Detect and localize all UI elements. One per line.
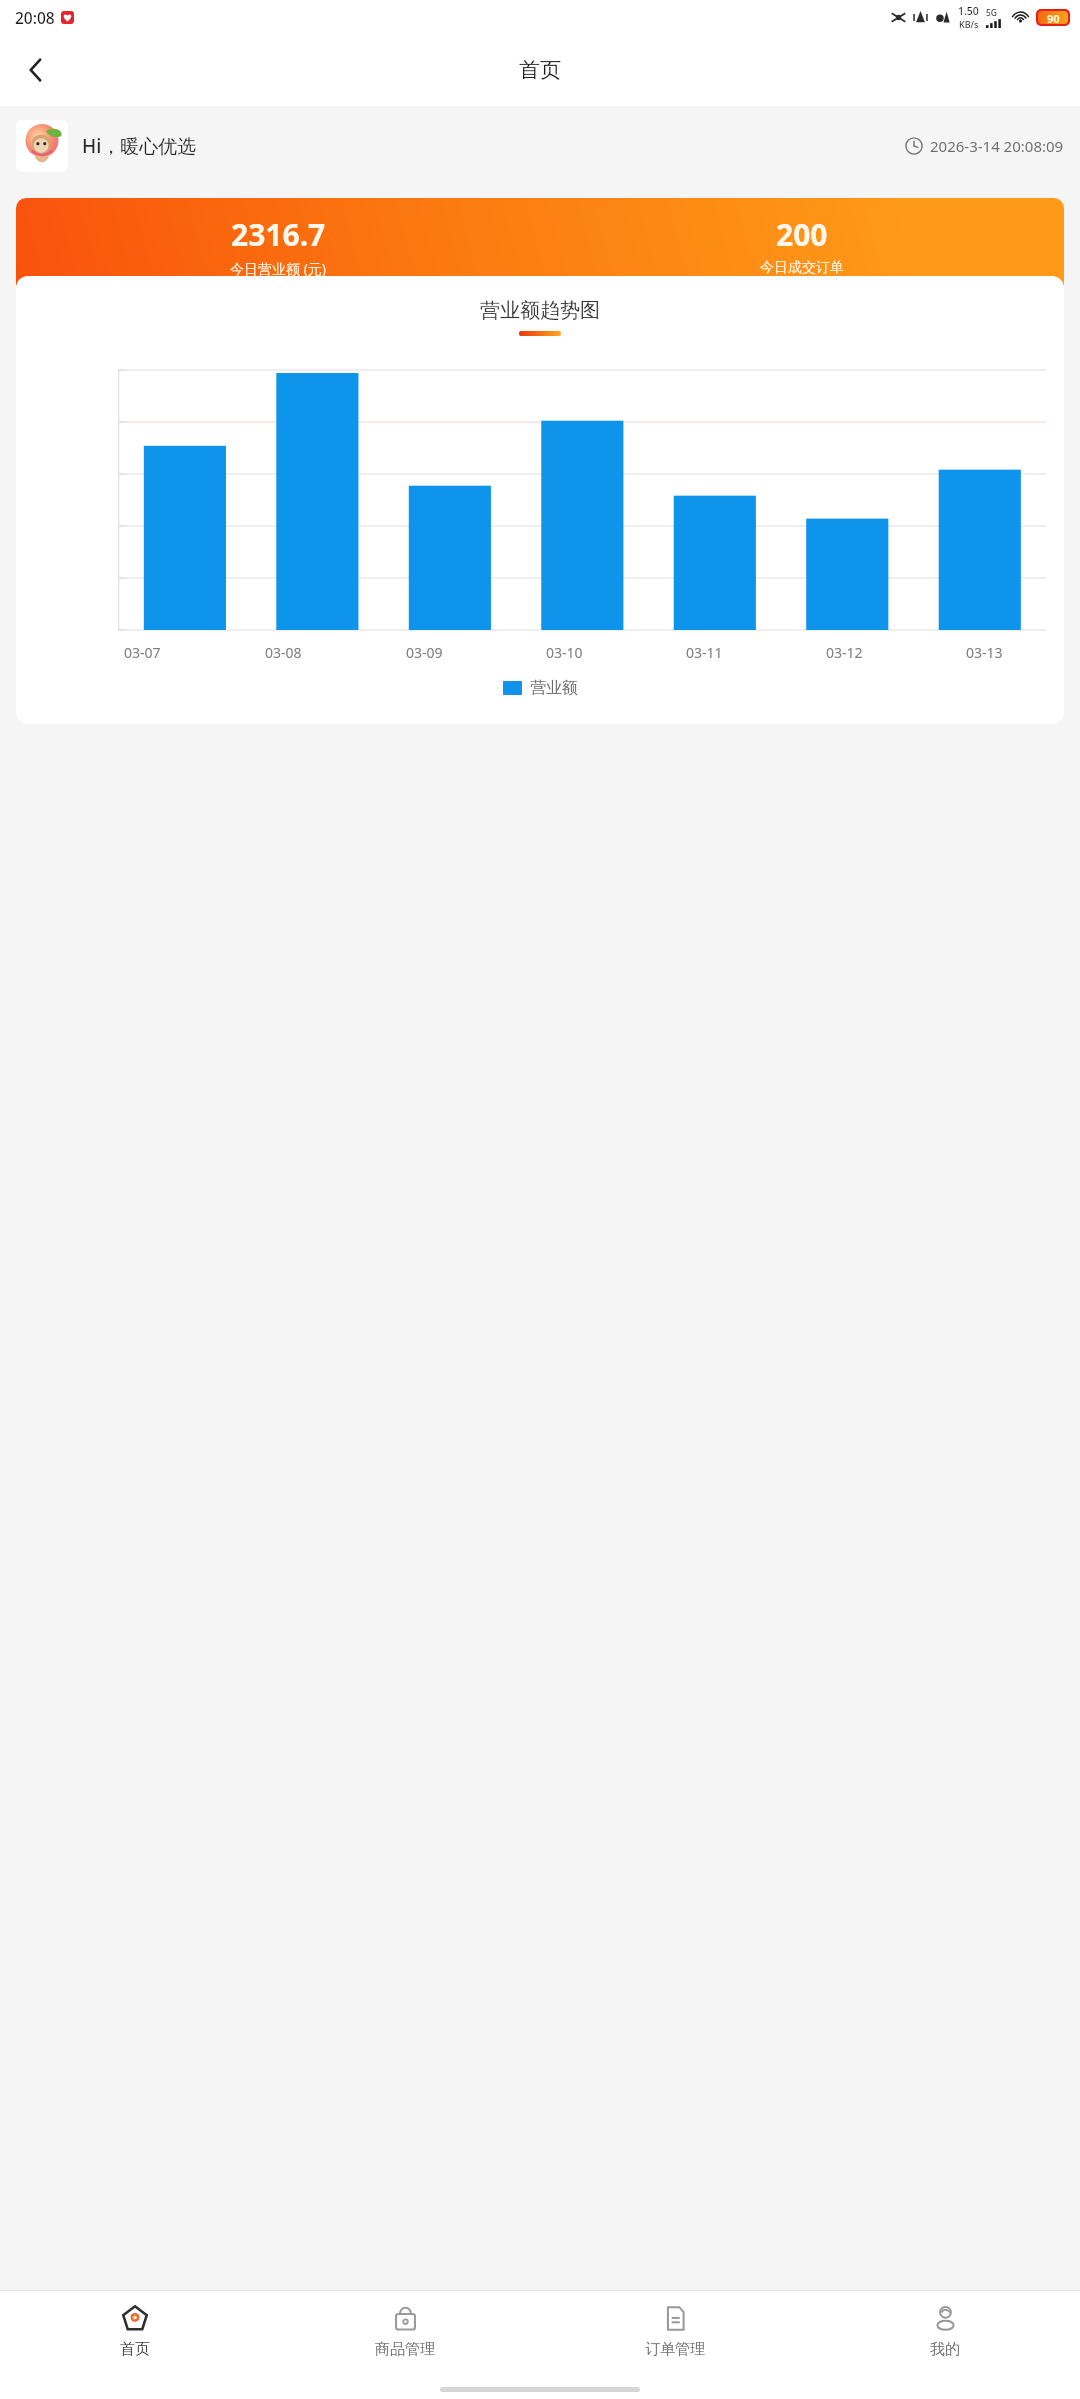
staticText: 今日成交订单 xyxy=(760,259,844,277)
staticText: 商品管理 xyxy=(375,2340,435,2359)
staticText: 200 xyxy=(776,214,828,255)
staticText: 今日营业额 (元) xyxy=(230,259,327,278)
staticText: Hi，暖心优选 xyxy=(82,133,197,159)
staticText: 2026-3-14 20:08:09 xyxy=(930,136,1064,156)
staticText: 5G xyxy=(986,7,998,19)
staticText: 订单管理 xyxy=(645,2340,705,2359)
staticText: 首页 xyxy=(120,2340,150,2359)
staticText: KB/s xyxy=(959,18,979,30)
button[interactable]: Avatar xyxy=(16,120,68,172)
button[interactable]: 商品管理 xyxy=(270,2291,540,2379)
staticText: 营业额趋势图 xyxy=(16,298,1064,323)
staticText: 我的 xyxy=(930,2340,960,2359)
button[interactable]: Back xyxy=(8,42,64,98)
button[interactable]: 首页 xyxy=(0,2291,270,2379)
staticText: 03-08 xyxy=(265,643,302,662)
staticText: 90 xyxy=(1047,11,1060,24)
staticText: 2316.7 xyxy=(231,214,326,255)
staticText: 03-09 xyxy=(406,643,443,662)
staticText: 03-12 xyxy=(826,643,863,662)
staticText: 03-10 xyxy=(546,643,583,662)
staticText: 03-13 xyxy=(966,643,1003,662)
staticText: 1.50 xyxy=(958,4,979,18)
button[interactable]: 订单管理 xyxy=(540,2291,810,2379)
staticText: 03-11 xyxy=(686,643,723,662)
staticText: 20:08 xyxy=(15,7,55,28)
button[interactable]: 我的 xyxy=(810,2291,1080,2379)
staticText: 03-07 xyxy=(124,643,161,662)
staticText: 营业额 xyxy=(530,678,578,698)
button[interactable]: 2316.7 xyxy=(16,198,1064,293)
staticText: 首页 xyxy=(519,57,561,83)
